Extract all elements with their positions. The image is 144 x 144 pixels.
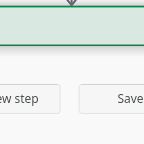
- staticText: Save: [117, 90, 144, 106]
- staticText: New step: [0, 90, 39, 106]
- button[interactable]: [79, 84, 144, 114]
- button[interactable]: [0, 84, 61, 114]
- button[interactable]: Collapse section: [62, 0, 82, 6]
